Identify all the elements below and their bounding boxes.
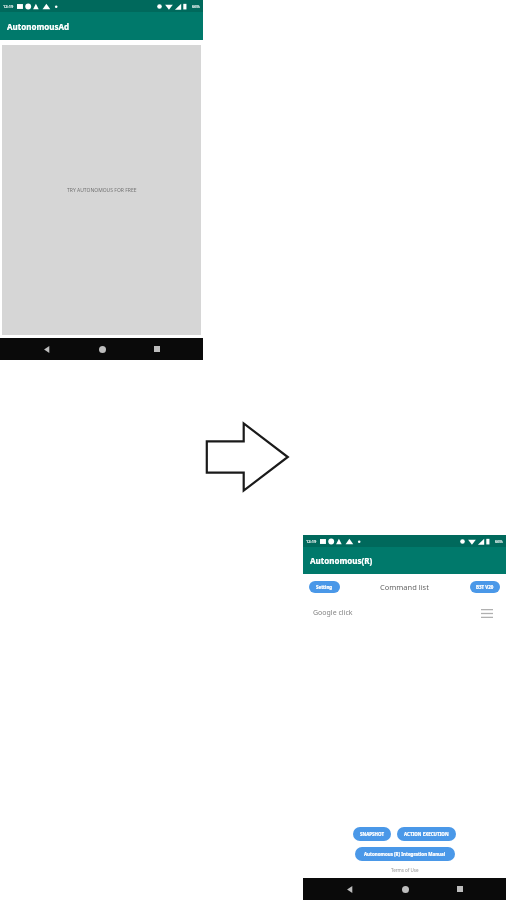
staticText: 12:19 [3, 4, 14, 9]
button[interactable]: Recents [147, 339, 167, 359]
button[interactable]: Home [92, 339, 112, 359]
staticText: 66% [495, 539, 503, 544]
button[interactable]: Back [339, 879, 359, 899]
staticText: AutonomousAd [7, 21, 70, 32]
staticText: Autonomous(R) [310, 555, 373, 566]
button[interactable]: Back [36, 339, 56, 359]
button[interactable]: Setting [309, 581, 340, 593]
button[interactable]: B3T V20 [470, 581, 500, 593]
staticText: Command list [380, 582, 429, 592]
button[interactable]: SNAPSHOT [353, 827, 391, 841]
button[interactable]: AutonomousAd [0, 12, 203, 40]
button[interactable]: Recents [450, 879, 470, 899]
staticText: Google click [313, 608, 353, 618]
button[interactable]: Autonomous (R) Integration Manual [355, 847, 455, 861]
staticText: SNAPSHOT [360, 831, 384, 837]
staticText: B3T V20 [476, 584, 494, 590]
staticText: 66% [192, 4, 200, 9]
button[interactable]: Autonomous(R) [303, 547, 506, 574]
staticText: Terms of Use [391, 867, 419, 873]
staticText: Autonomous (R) Integration Manual [364, 851, 446, 857]
button[interactable]: Home [395, 879, 415, 899]
staticText: 12:19 [306, 539, 317, 544]
staticText: ACTION EXECUTION [404, 831, 449, 837]
button[interactable]: ACTION EXECUTION [397, 827, 456, 841]
button[interactable]: Menu [478, 604, 496, 622]
staticText: TRY AUTONOMOUS FOR FREE [67, 187, 137, 194]
button[interactable]: Google click [313, 608, 353, 618]
staticText: Setting [316, 584, 333, 590]
